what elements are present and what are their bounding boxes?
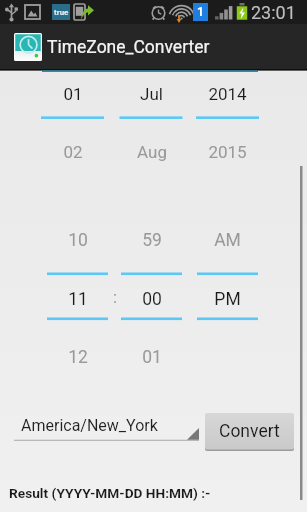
staticText: Jul [140,84,163,104]
staticText: 2015 [208,142,247,162]
button[interactable]: Convert [205,413,294,451]
staticText: AM [214,230,241,251]
button[interactable]: 2014 [196,80,259,108]
button[interactable]: 01 [121,343,182,371]
button[interactable]: America/New_York [14,411,199,441]
button[interactable]: PM [197,285,258,313]
staticText: 10 [68,230,88,251]
button[interactable]: 00 [121,285,182,313]
staticText: Aug [137,142,167,162]
staticText: true [54,8,69,17]
staticText: 00 [142,289,162,310]
button[interactable]: Aug [120,138,183,166]
button[interactable]: 2015 [196,138,259,166]
staticText: 2014 [208,84,247,104]
staticText: 23:01 [251,2,296,23]
staticText: 01 [63,84,83,104]
staticText: 11 [68,289,88,310]
staticText: 1 [197,5,204,19]
staticText: PM [214,289,241,310]
staticText: 01 [142,347,162,368]
staticText: Result (YYYY-MM-DD HH:MM) :- [9,485,211,501]
staticText: 59 [142,230,162,251]
button[interactable]: 12 [47,343,108,371]
button[interactable]: 02 [41,138,104,166]
staticText: : [113,287,118,307]
staticText: America/New_York [21,416,158,435]
other: App icon [14,33,42,61]
staticText: 02 [63,142,83,162]
button[interactable]: 10 [47,226,108,254]
staticText: 12 [68,347,88,368]
button[interactable]: 11 [47,285,108,313]
staticText: Convert [219,421,280,442]
button[interactable]: 01 [41,80,104,108]
button[interactable]: 59 [121,226,182,254]
staticText: TimeZone_Converter [47,37,210,58]
button[interactable]: AM [197,226,258,254]
button[interactable]: Jul [120,80,183,108]
